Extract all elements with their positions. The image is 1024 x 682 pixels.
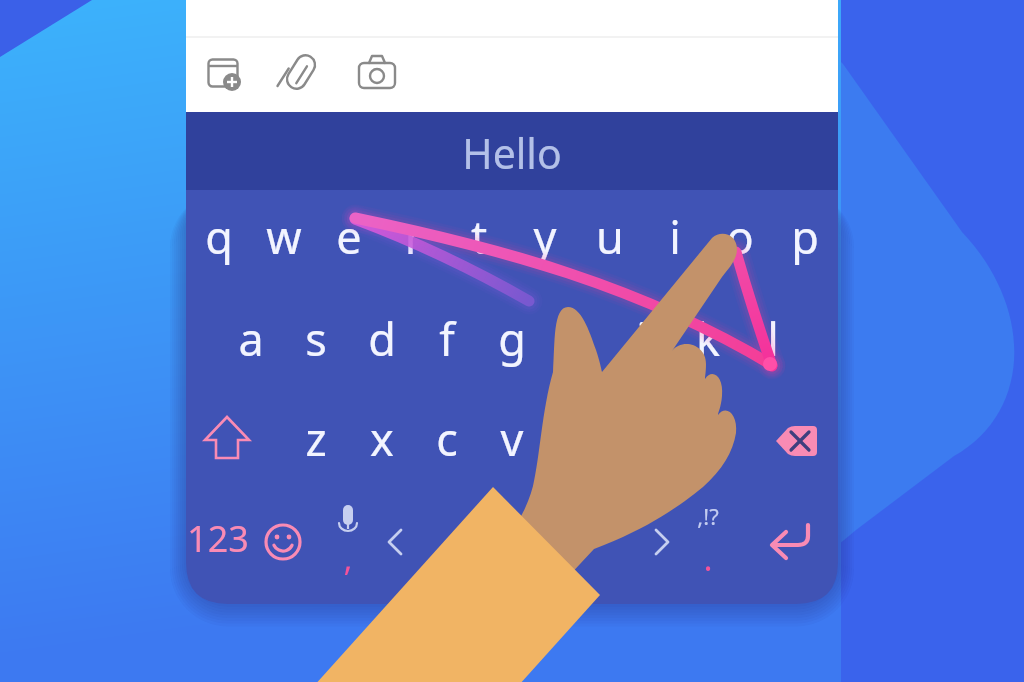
staticText: o bbox=[680, 206, 800, 274]
staticText: l bbox=[713, 308, 833, 376]
button[interactable]: k bbox=[675, 290, 740, 390]
button[interactable]: a bbox=[219, 290, 284, 390]
button[interactable]: l bbox=[740, 290, 805, 390]
staticText: z bbox=[256, 408, 376, 476]
button[interactable]: r bbox=[382, 190, 447, 290]
staticText: Hello bbox=[511, 151, 514, 152]
staticText: q bbox=[159, 206, 279, 274]
button[interactable]: g bbox=[479, 290, 544, 390]
staticText: k bbox=[648, 308, 768, 376]
staticText: m bbox=[648, 408, 768, 476]
staticText: d bbox=[322, 308, 442, 376]
button[interactable]: Backspace bbox=[740, 390, 838, 490]
staticText: y bbox=[485, 206, 605, 274]
button[interactable]: w bbox=[251, 190, 316, 290]
button[interactable]: v bbox=[479, 390, 544, 490]
staticText: g bbox=[452, 308, 572, 376]
button[interactable]: z bbox=[284, 390, 349, 490]
staticText: c bbox=[387, 408, 507, 476]
button[interactable]: Shift bbox=[186, 390, 284, 490]
staticText: s bbox=[256, 308, 376, 376]
staticText: i bbox=[615, 206, 735, 274]
staticText: w bbox=[224, 206, 344, 274]
button[interactable]: t bbox=[447, 190, 512, 290]
button[interactable]: j bbox=[610, 290, 675, 390]
staticText: u bbox=[550, 206, 670, 274]
staticText: ,!? bbox=[648, 501, 768, 534]
button[interactable]: q bbox=[186, 190, 251, 290]
button[interactable]: f bbox=[414, 290, 479, 390]
button[interactable]: Hello bbox=[186, 112, 838, 190]
button[interactable]: Enter bbox=[747, 490, 838, 594]
staticText: x bbox=[322, 408, 442, 476]
button[interactable]: i bbox=[642, 190, 707, 290]
staticText: j bbox=[582, 308, 702, 376]
button[interactable]: Space bbox=[382, 490, 747, 594]
button[interactable]: Add sticker bbox=[186, 37, 262, 112]
staticText: b bbox=[517, 408, 637, 476]
button[interactable]: h bbox=[545, 290, 610, 390]
button[interactable]: d bbox=[349, 290, 414, 390]
button[interactable]: Attach file bbox=[262, 37, 338, 112]
button[interactable]: c bbox=[414, 390, 479, 490]
button[interactable]: p bbox=[773, 190, 838, 290]
button[interactable]: m bbox=[675, 390, 740, 490]
staticText: , bbox=[288, 535, 408, 586]
button[interactable]: b bbox=[545, 390, 610, 490]
button[interactable]: e bbox=[316, 190, 381, 290]
staticText: . bbox=[648, 535, 768, 586]
staticText: e bbox=[289, 206, 409, 274]
staticText: a bbox=[191, 308, 311, 376]
staticText: p bbox=[745, 206, 865, 274]
staticText: Hello bbox=[452, 125, 572, 187]
button[interactable]: u bbox=[577, 190, 642, 290]
staticText: 123 bbox=[158, 514, 278, 568]
button[interactable]: Camera bbox=[338, 37, 416, 112]
staticText: v bbox=[452, 408, 572, 476]
button[interactable]: o bbox=[708, 190, 773, 290]
button[interactable]: Voice input bbox=[316, 490, 381, 594]
button[interactable]: y bbox=[512, 190, 577, 290]
staticText: r bbox=[354, 206, 474, 274]
staticText: f bbox=[387, 308, 507, 376]
button[interactable]: 123 bbox=[186, 490, 251, 594]
button[interactable]: s bbox=[284, 290, 349, 390]
staticText: 123 bbox=[218, 542, 220, 543]
button[interactable]: Emoji bbox=[251, 490, 316, 594]
staticText: h bbox=[517, 308, 637, 376]
button[interactable]: x bbox=[349, 390, 414, 490]
staticText: t bbox=[419, 206, 539, 274]
